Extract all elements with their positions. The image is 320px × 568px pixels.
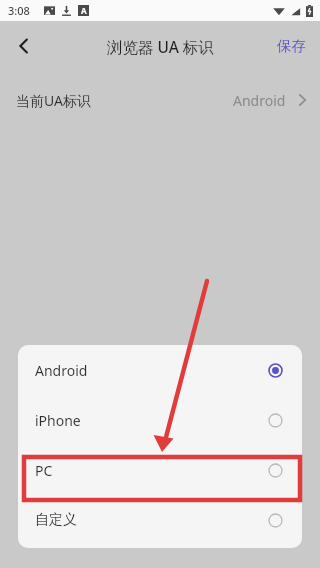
staticText: Android	[233, 91, 286, 110]
staticText: iPhone	[35, 411, 81, 430]
staticText: Android	[35, 361, 88, 380]
button[interactable]: 保存	[263, 27, 320, 65]
staticText: 浏览器 UA 标识	[107, 36, 214, 57]
button[interactable]: 当前UA标识	[0, 71, 320, 129]
button[interactable]: PC	[18, 445, 302, 495]
staticText: A	[81, 5, 87, 16]
staticText: 当前UA标识	[16, 91, 92, 110]
button[interactable]: 自定义	[18, 495, 302, 545]
button[interactable]: iPhone	[18, 395, 302, 445]
staticText: 3:08	[8, 3, 30, 18]
button[interactable]: Back	[0, 22, 48, 70]
staticText: 自定义	[35, 511, 77, 529]
staticText: 保存	[277, 37, 306, 55]
staticText: PC	[35, 461, 53, 480]
button[interactable]: Android	[18, 345, 302, 395]
